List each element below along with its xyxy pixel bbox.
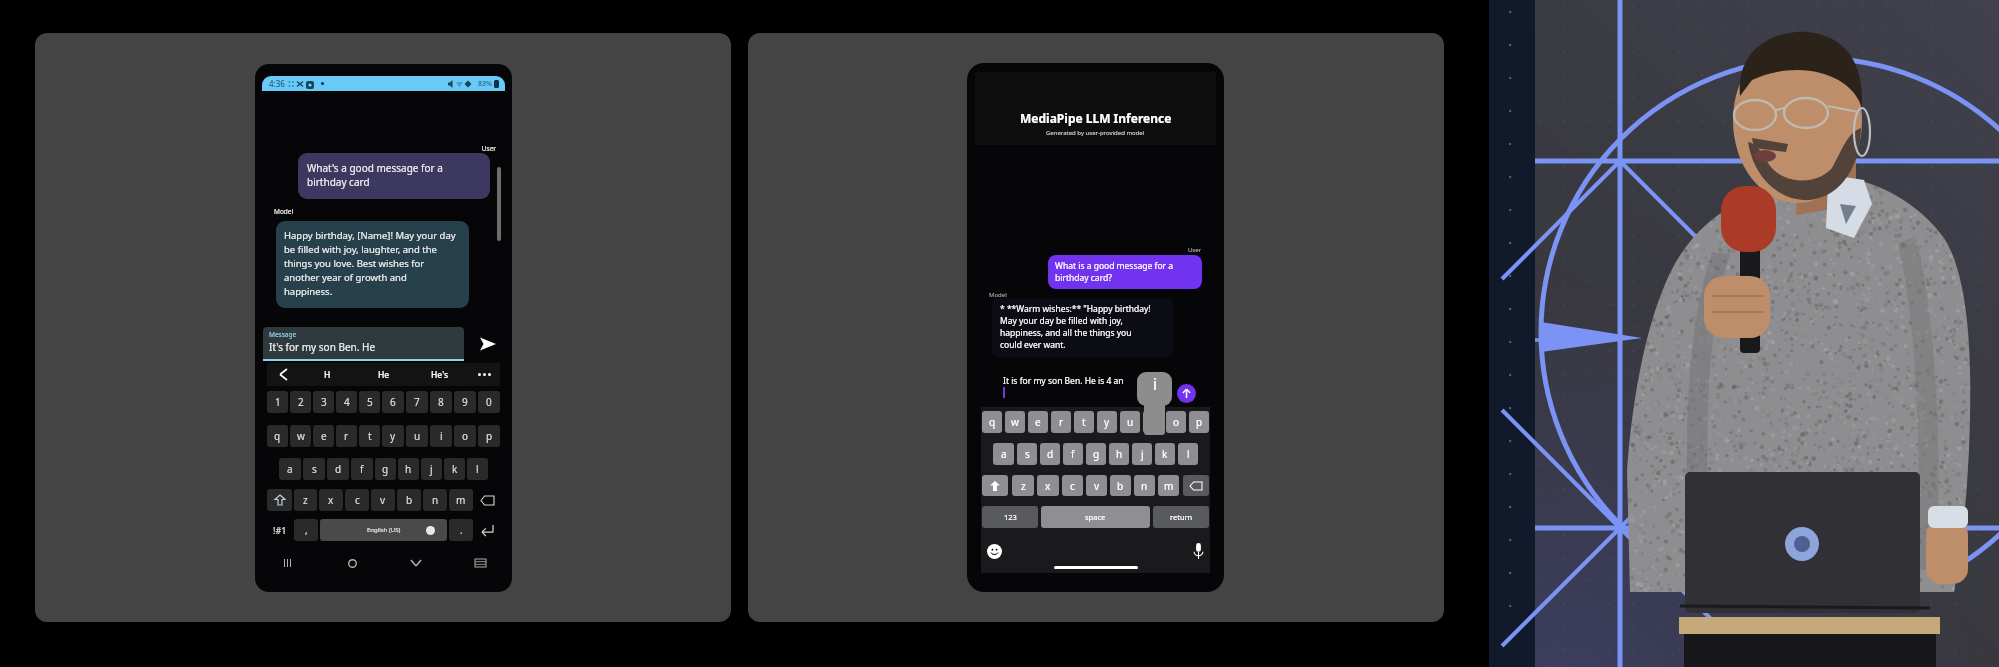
staticText: c (1070, 479, 1075, 493)
button[interactable]: Previous suggestions (267, 363, 299, 386)
button[interactable]: Back (384, 552, 448, 574)
staticText: m (1164, 479, 1174, 493)
button[interactable]: Send message (1177, 384, 1196, 403)
button[interactable]: c (345, 489, 369, 511)
button[interactable]: a (279, 458, 301, 480)
button[interactable]: He (356, 363, 412, 386)
button[interactable]: n (1134, 475, 1155, 496)
button[interactable]: f (1063, 443, 1083, 465)
button[interactable]: Happy birthday, [Name]! May your day be … (276, 221, 469, 308)
button[interactable]: t (1074, 411, 1094, 433)
button[interactable]: t (359, 425, 380, 447)
button[interactable] (982, 475, 1008, 496)
button[interactable]: 1 (267, 391, 288, 413)
button[interactable]: What's a good message for a birthday car… (298, 153, 490, 199)
button[interactable]: 3 (313, 391, 334, 413)
button[interactable]: 2 (290, 391, 311, 413)
button[interactable]: l (1178, 443, 1198, 465)
button[interactable]: n (423, 489, 447, 511)
button[interactable]: Enter (475, 519, 500, 541)
button[interactable]: p (1189, 411, 1209, 433)
button[interactable]: b (1110, 475, 1131, 496)
button[interactable]: s (303, 458, 325, 480)
button[interactable]: He's (412, 363, 468, 386)
button[interactable]: q (267, 425, 288, 447)
button[interactable]: Message (263, 327, 464, 361)
button[interactable]: z (294, 489, 317, 511)
button[interactable]: x (319, 489, 343, 511)
button[interactable]: e (1028, 411, 1048, 433)
button[interactable]: u (406, 425, 428, 447)
button[interactable]: m (449, 489, 473, 511)
button[interactable]: h (1109, 443, 1129, 465)
staticText: 83% (478, 79, 492, 89)
button[interactable]: * **Warm wishes:** "Happy birthday! May … (992, 298, 1173, 357)
button[interactable]: y (1097, 411, 1117, 433)
button[interactable]: o (1166, 411, 1186, 433)
button[interactable]: k (444, 458, 465, 480)
button[interactable]: !#1 (267, 519, 292, 541)
button[interactable]: f (351, 458, 373, 480)
button[interactable]: 8 (430, 391, 452, 413)
button[interactable]: b (397, 489, 421, 511)
button[interactable]: h (398, 458, 419, 480)
button[interactable]: k (1155, 443, 1175, 465)
button[interactable]: H (299, 363, 356, 386)
button[interactable]: o (454, 425, 476, 447)
button[interactable]: Backspace (1183, 475, 1209, 496)
button[interactable]: p (478, 425, 500, 447)
button[interactable]: Home (320, 552, 384, 574)
button[interactable]: , (294, 519, 318, 541)
button[interactable]: i (430, 425, 452, 447)
staticText: q (274, 429, 281, 443)
button[interactable]: 123 (982, 506, 1038, 528)
button[interactable]: c (1062, 475, 1083, 496)
button[interactable]: q (982, 411, 1002, 433)
button[interactable]: 6 (382, 391, 404, 413)
button[interactable]: w (290, 425, 311, 447)
button[interactable]: Recents (255, 552, 320, 574)
button[interactable]: w (1005, 411, 1025, 433)
button[interactable]: More options (468, 363, 500, 386)
button[interactable]: z (1012, 475, 1034, 496)
button[interactable]: Backspace (475, 489, 500, 511)
button[interactable]: Emoji (987, 544, 1002, 559)
staticText: s (312, 462, 317, 476)
button[interactable]: . (449, 519, 473, 541)
button[interactable]: j (1132, 443, 1152, 465)
button[interactable]: d (1040, 443, 1060, 465)
button[interactable]: r (336, 425, 357, 447)
button[interactable]: 9 (454, 391, 476, 413)
button[interactable]: What is a good message for a birthday ca… (1048, 255, 1202, 289)
button[interactable]: 4 (336, 391, 357, 413)
button[interactable]: a (993, 443, 1014, 465)
button[interactable]: i (1143, 411, 1163, 433)
button[interactable]: Keyboard (448, 552, 512, 574)
button[interactable]: j (421, 458, 442, 480)
button[interactable]: r (1051, 411, 1071, 433)
button[interactable]: Dictate (1193, 543, 1204, 559)
button[interactable]: y (382, 425, 404, 447)
button[interactable]: u (1120, 411, 1140, 433)
button[interactable] (267, 489, 292, 511)
button[interactable]: d (327, 458, 349, 480)
button[interactable]: space (1041, 506, 1150, 528)
button[interactable]: m (1158, 475, 1179, 496)
button[interactable]: 7 (406, 391, 428, 413)
button[interactable]: l (467, 458, 488, 480)
staticText: h (405, 462, 412, 476)
button[interactable]: g (375, 458, 396, 480)
button[interactable]: e (313, 425, 334, 447)
button[interactable]: g (1086, 443, 1106, 465)
button[interactable]: return (1153, 506, 1209, 528)
button[interactable]: Send (464, 327, 512, 361)
button[interactable]: 0 (478, 391, 500, 413)
button[interactable]: 5 (359, 391, 380, 413)
button[interactable]: x (1037, 475, 1059, 496)
staticText: i (440, 429, 443, 443)
button[interactable]: v (371, 489, 395, 511)
staticText: s (1025, 447, 1030, 461)
button[interactable]: s (1017, 443, 1037, 465)
button[interactable]: v (1086, 475, 1107, 496)
button[interactable]: English (US) (320, 519, 447, 541)
